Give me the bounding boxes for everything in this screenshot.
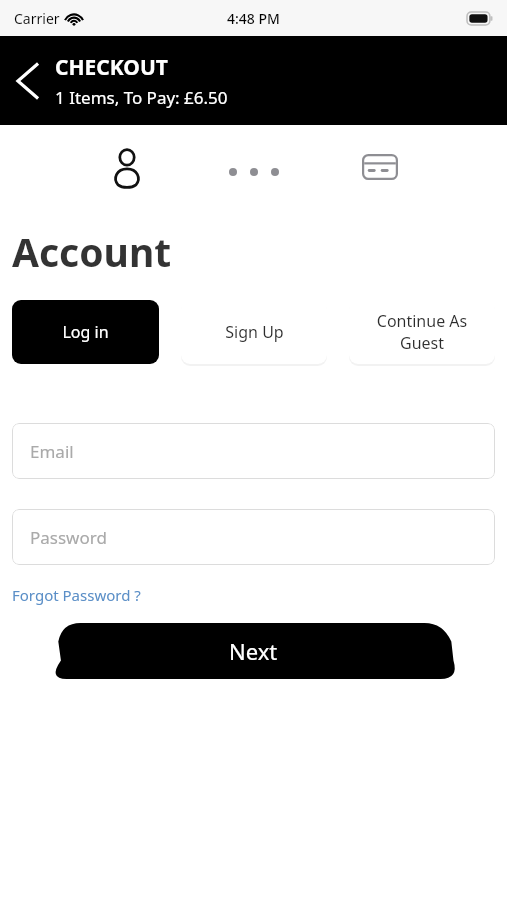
staticText: Account — [12, 225, 172, 278]
staticText: Email — [30, 440, 74, 463]
staticText: Continue As Guest — [355, 310, 489, 354]
staticText: Log in — [62, 321, 109, 343]
staticText: CHECKOUT — [55, 53, 168, 82]
staticText: Carrier — [14, 9, 60, 28]
button[interactable]: Next — [0, 623, 507, 679]
button[interactable]: Account — [103, 143, 151, 191]
staticText: 1 Items, To Pay: £6.50 — [55, 86, 228, 109]
button[interactable]: Email — [12, 423, 495, 479]
button[interactable]: Continue As Guest — [349, 300, 495, 364]
button[interactable]: Back — [16, 62, 40, 100]
button[interactable]: Log in — [12, 300, 159, 364]
button[interactable]: Payment — [356, 143, 404, 191]
button[interactable]: Forgot Password ? — [12, 585, 141, 605]
button[interactable]: Sign Up — [181, 300, 327, 364]
staticText: Next — [229, 636, 278, 666]
button[interactable]: Password — [12, 509, 495, 565]
staticText: 4:48 PM — [227, 9, 280, 28]
staticText: Sign Up — [225, 321, 284, 343]
staticText: Password — [30, 526, 107, 549]
